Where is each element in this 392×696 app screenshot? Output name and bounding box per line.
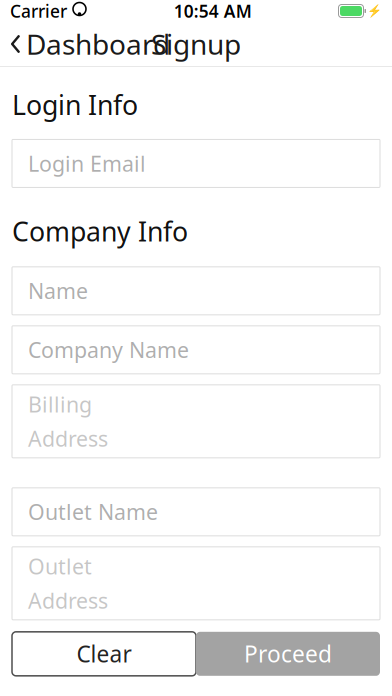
staticText: Login Email [28,149,146,177]
staticText: Clear [76,639,131,669]
staticText: Dashboard [26,25,170,63]
staticText: Proceed [244,639,332,669]
staticText: Address [28,424,108,453]
button[interactable]: Dashboard [0,19,170,69]
staticText: ⚡ [367,4,382,18]
staticText: Name [28,277,88,305]
staticText: 10:54 AM [174,0,252,22]
button[interactable]: Clear [12,632,196,676]
staticText: Outlet Name [28,498,158,526]
staticText: Address [28,586,108,615]
staticText: Signup [151,25,241,63]
staticText: Billing [28,390,92,418]
staticText: Carrier [10,0,67,22]
staticText [67,0,72,22]
staticText: Login Info [12,87,138,122]
staticText: Outlet [28,552,92,580]
button[interactable]: Proceed [196,632,380,676]
staticText: Company Info [12,213,188,249]
staticText: Company Name [28,336,189,364]
